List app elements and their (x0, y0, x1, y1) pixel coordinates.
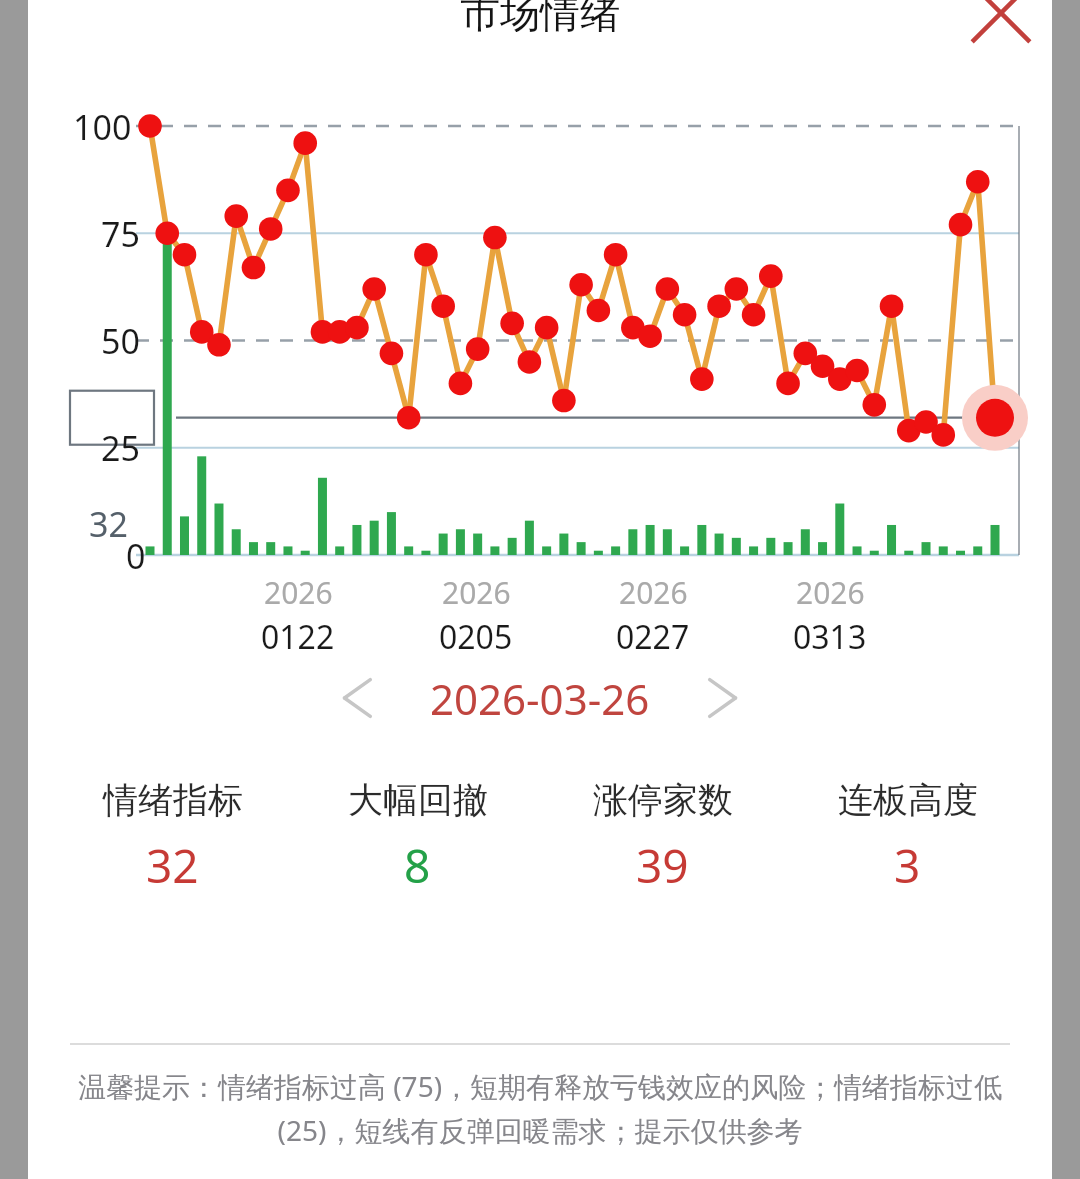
button[interactable]: 涨停家数 (540, 778, 785, 897)
staticText: 涨停家数 (593, 778, 733, 822)
staticText: 39 (636, 834, 689, 897)
staticText: 75 (101, 211, 140, 257)
button[interactable]: Next day (692, 664, 760, 732)
staticText: 8 (404, 834, 431, 897)
button[interactable]: 连板高度 (785, 778, 1030, 897)
staticText: 0205 (439, 615, 513, 659)
staticText: 32 (89, 501, 128, 547)
button[interactable]: 大幅回撤 (295, 778, 540, 897)
staticText: 情绪指标 (103, 778, 243, 822)
staticText: 2026 (619, 572, 688, 613)
staticText: 0 (126, 533, 146, 579)
staticText: 0122 (261, 615, 335, 659)
staticText: 32 (146, 834, 199, 897)
staticText: 50 (101, 318, 140, 364)
staticText: 25 (101, 425, 140, 471)
staticText: 2026 (264, 572, 333, 613)
staticText: 3 (894, 834, 921, 897)
staticText: 市场情绪 (460, 0, 620, 32)
button[interactable]: Previous day (320, 664, 388, 732)
staticText: 2026-03-26 (430, 670, 650, 727)
staticText: 0227 (616, 615, 690, 659)
button[interactable]: Close (962, 0, 1040, 18)
staticText: 连板高度 (838, 778, 978, 822)
staticText: 大幅回撤 (348, 778, 488, 822)
staticText: 温馨提示：情绪指标过高 (75)，短期有释放亏钱效应的风险；情绪指标过低 (25… (72, 1067, 1008, 1149)
staticText: 0313 (793, 615, 867, 659)
button[interactable]: 情绪指标 (50, 778, 295, 897)
staticText: 100 (73, 104, 132, 150)
button[interactable]: 2026-03-26 (422, 664, 658, 733)
staticText: 2026 (796, 572, 865, 613)
staticText: 2026 (442, 572, 511, 613)
